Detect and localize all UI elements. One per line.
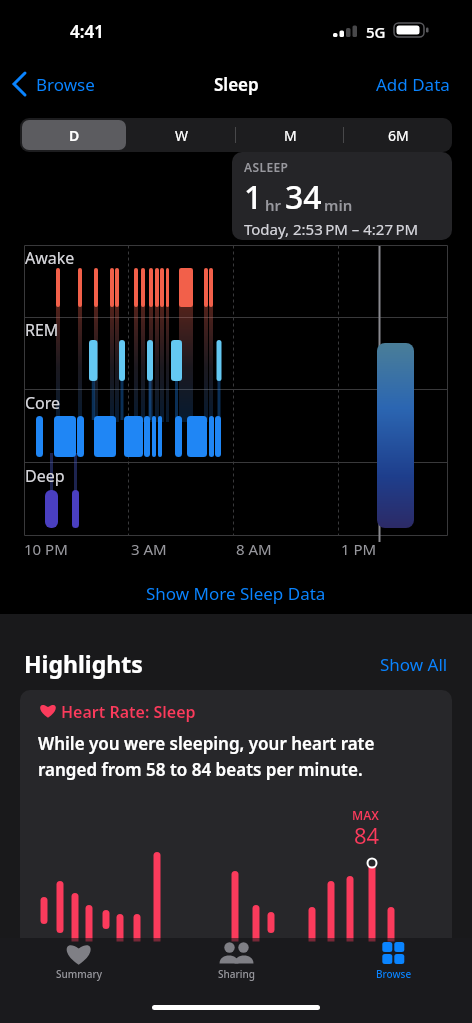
button[interactable]: M (236, 118, 344, 152)
button[interactable]: Summary (0, 938, 158, 985)
staticText: W (175, 126, 189, 145)
staticText: Highlights (24, 648, 143, 679)
button[interactable]: W (128, 118, 236, 152)
staticText: Browse (36, 73, 95, 96)
staticText: REM (25, 319, 59, 341)
button[interactable]: D (20, 118, 128, 152)
button[interactable]: Show More Sleep Data (146, 582, 326, 605)
staticText: Browse (376, 967, 412, 981)
staticText: 8 AM (236, 539, 272, 559)
staticText: Sleep (214, 73, 259, 96)
staticText: Today, 2:53 PM – 4:27 PM (244, 219, 419, 239)
staticText: 5G (366, 22, 386, 42)
staticText: 4:41 (70, 20, 104, 43)
button[interactable]: Sharing (158, 938, 315, 985)
button[interactable]: Browse (315, 938, 472, 985)
staticText: 10 PM (24, 539, 68, 559)
button[interactable] (20, 690, 452, 1023)
staticText: D (69, 126, 80, 145)
staticText: Core (25, 392, 61, 414)
staticText: 3 AM (131, 539, 167, 559)
button[interactable]: 6M (344, 118, 452, 152)
staticText: hr (265, 195, 285, 215)
staticText: While you were sleeping, your heart rate… (38, 732, 375, 781)
staticText: Deep (25, 465, 65, 487)
button[interactable]: Browse (10, 70, 110, 100)
staticText: min (324, 195, 353, 215)
button[interactable]: Show All (380, 653, 448, 676)
staticText: Heart Rate: Sleep (61, 701, 196, 723)
staticText: 1 (244, 175, 263, 219)
staticText: ASLEEP (244, 159, 289, 175)
staticText: 84 (354, 820, 380, 850)
staticText: M (284, 126, 297, 145)
staticText: Awake (25, 247, 75, 269)
staticText: Summary (56, 967, 102, 981)
staticText: 6M (388, 126, 409, 145)
staticText: Sharing (218, 967, 255, 981)
staticText: 1 PM (341, 539, 377, 559)
button[interactable]: Add Data (376, 73, 450, 96)
staticText: 34 (285, 175, 322, 219)
staticText: MAX (352, 807, 379, 823)
